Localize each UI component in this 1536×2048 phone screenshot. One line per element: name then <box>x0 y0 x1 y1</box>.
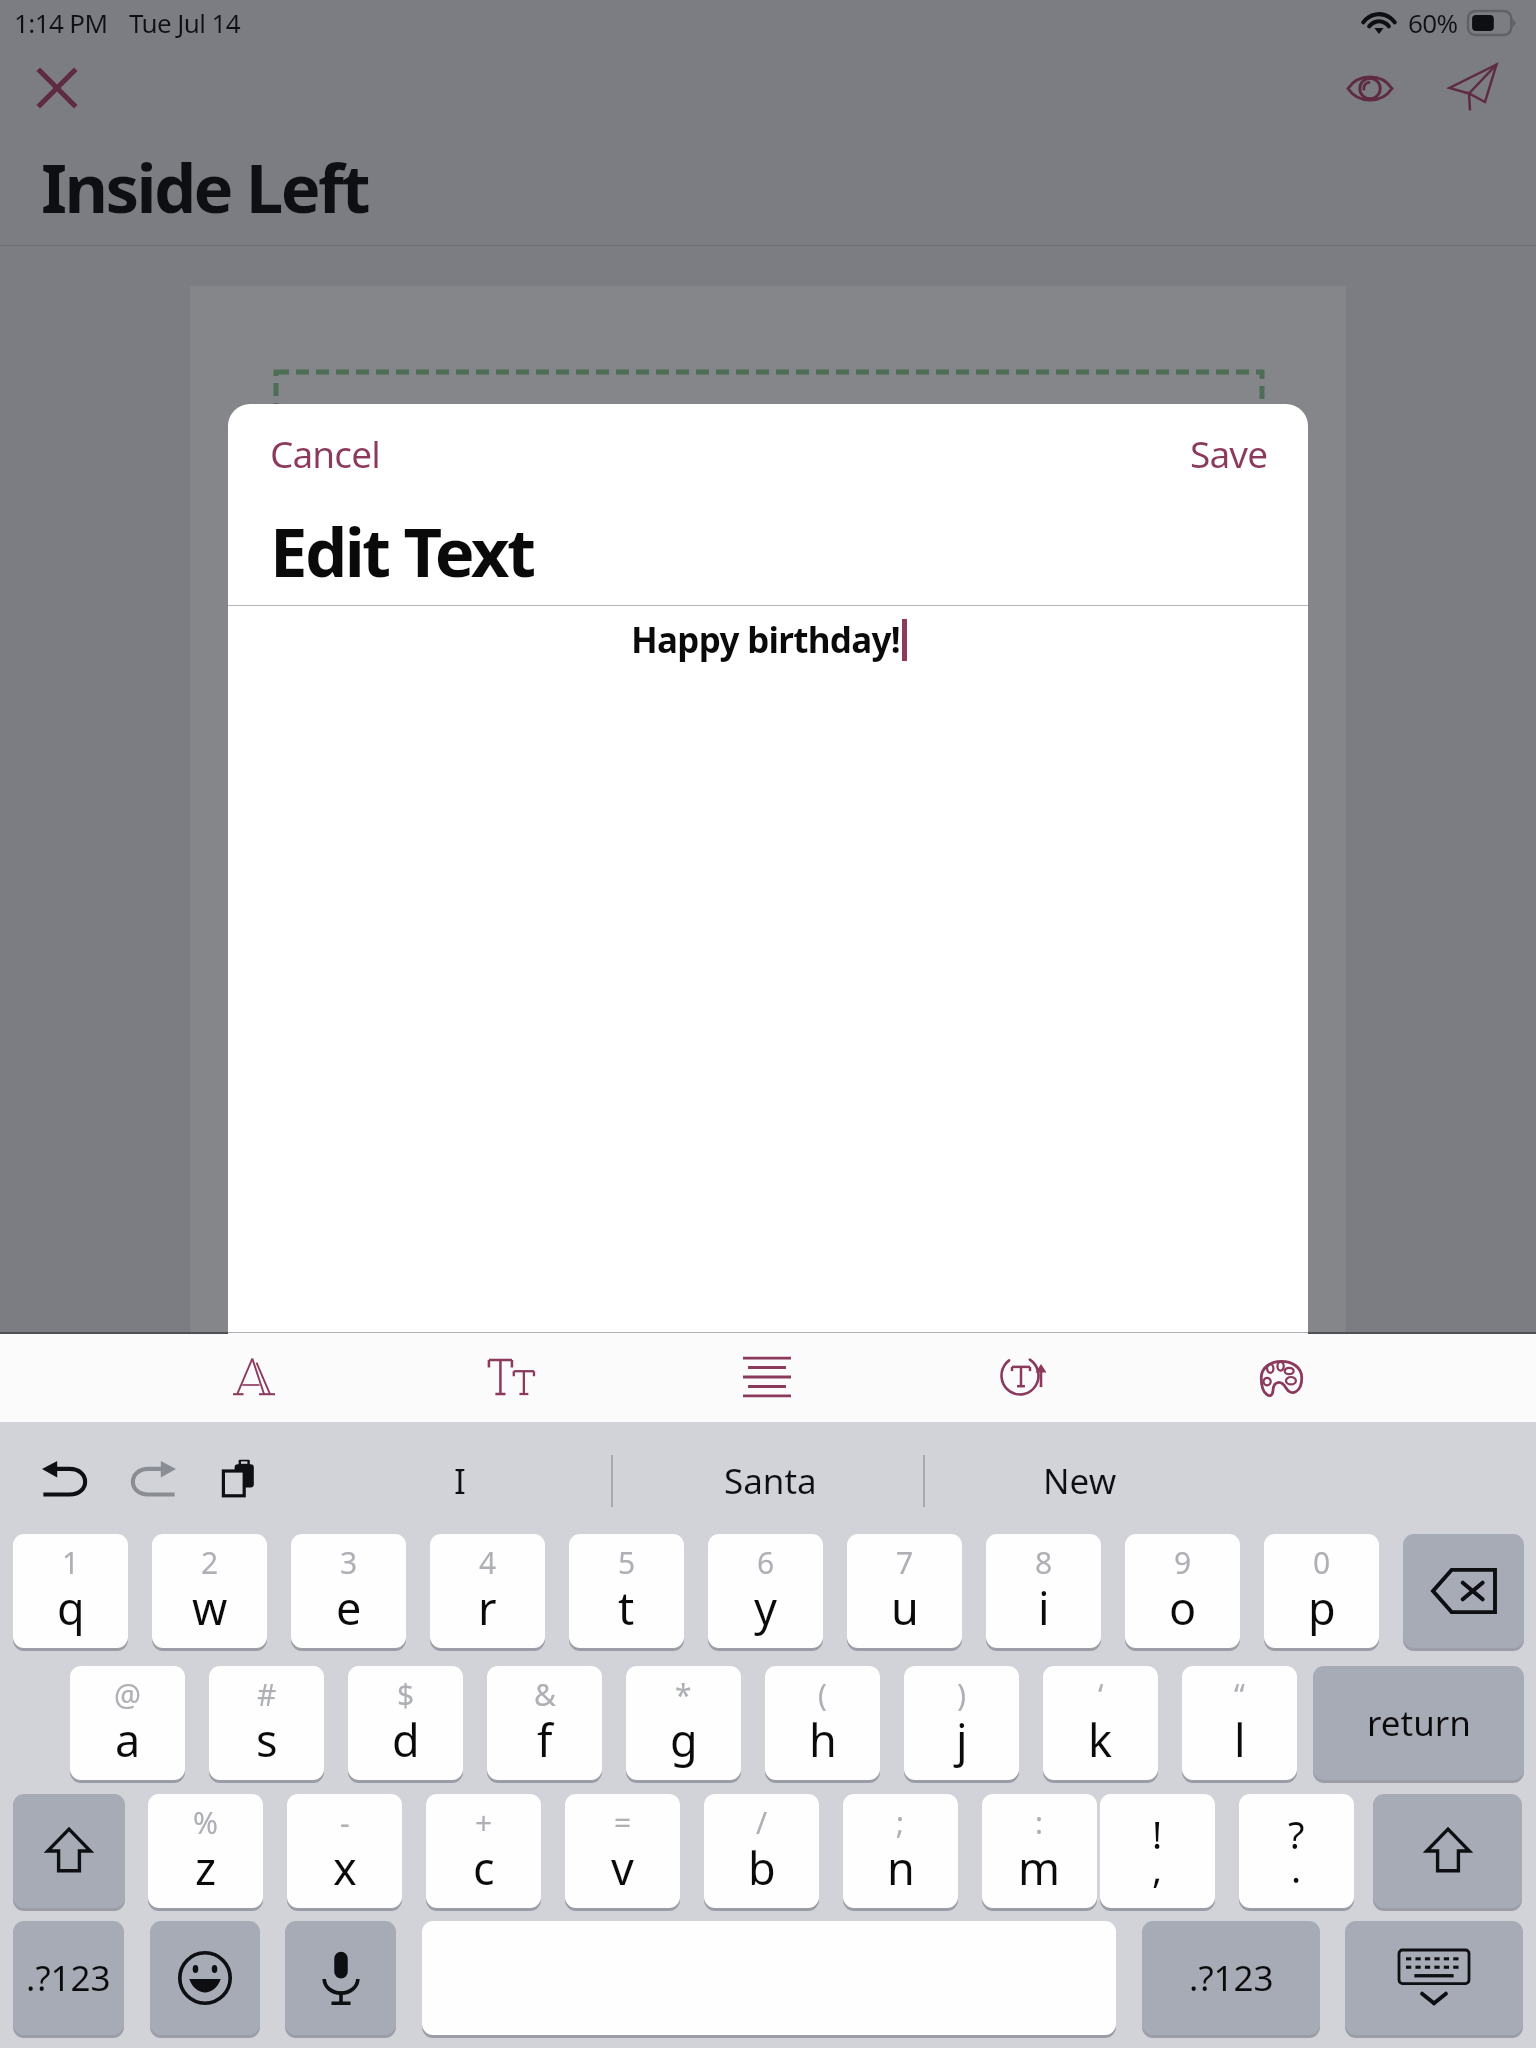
button[interactable]: * <box>626 1666 741 1780</box>
button[interactable]: Preview <box>1340 58 1400 118</box>
button[interactable]: Alignment <box>723 1333 811 1421</box>
button[interactable]: Shift <box>1373 1794 1522 1908</box>
button[interactable]: Paste <box>202 1440 280 1518</box>
button[interactable]: 8 <box>986 1534 1101 1648</box>
staticText: 8 <box>1035 1542 1053 1583</box>
button[interactable]: Dictate <box>285 1921 396 2035</box>
button[interactable]: Hide keyboard <box>1345 1921 1523 2035</box>
staticText: & <box>534 1674 556 1715</box>
button[interactable]: 2 <box>152 1534 267 1648</box>
staticText: Tue Jul 14 <box>129 5 241 40</box>
staticText: / <box>756 1802 768 1843</box>
button[interactable]: 7 <box>847 1534 962 1648</box>
staticText: ) <box>957 1674 966 1715</box>
button[interactable]: 6 <box>708 1534 823 1648</box>
button[interactable]: “ <box>1182 1666 1297 1780</box>
button[interactable]: Cancel <box>262 420 388 486</box>
staticText: t <box>618 1577 635 1638</box>
button[interactable]: Santa <box>670 1426 870 1536</box>
staticText: l <box>1234 1709 1246 1770</box>
staticText: f <box>537 1709 553 1770</box>
staticText: v <box>611 1837 634 1898</box>
button[interactable]: / <box>704 1794 819 1908</box>
staticText: = <box>614 1802 632 1843</box>
button[interactable]: Save <box>1182 420 1276 486</box>
staticText: u <box>891 1577 919 1638</box>
button[interactable]: Rotate text <box>980 1333 1068 1421</box>
button[interactable]: : <box>982 1794 1097 1908</box>
staticText: c <box>473 1837 495 1898</box>
staticText: g <box>670 1709 698 1770</box>
staticText: ; <box>896 1802 905 1843</box>
staticText: $ <box>397 1674 415 1715</box>
button[interactable]: $ <box>348 1666 463 1780</box>
staticText: m <box>1018 1837 1061 1898</box>
staticText: - <box>340 1802 350 1843</box>
button[interactable]: @ <box>70 1666 185 1780</box>
staticText: a <box>115 1709 141 1770</box>
button[interactable]: Undo <box>26 1440 104 1518</box>
button[interactable]: Text size <box>467 1333 555 1421</box>
staticText: 7 <box>896 1542 914 1583</box>
button[interactable]: 0 <box>1264 1534 1379 1648</box>
button[interactable]: I <box>384 1426 536 1536</box>
button[interactable]: ( <box>765 1666 880 1780</box>
button[interactable]: ) <box>904 1666 1019 1780</box>
button[interactable]: return <box>1313 1666 1524 1780</box>
staticText: s <box>256 1709 278 1770</box>
staticText: y <box>754 1577 777 1638</box>
button[interactable]: 4 <box>430 1534 545 1648</box>
button[interactable]: ; <box>843 1794 958 1908</box>
staticText: .?123 <box>1189 1954 1274 2002</box>
button[interactable]: 3 <box>291 1534 406 1648</box>
staticText: , <box>1152 1842 1163 1894</box>
staticText: r <box>478 1577 497 1638</box>
staticText: Edit Text <box>270 505 534 596</box>
button[interactable]: 5 <box>569 1534 684 1648</box>
staticText: % <box>193 1802 218 1843</box>
staticText: d <box>392 1709 420 1770</box>
button[interactable]: Backspace <box>1403 1534 1524 1648</box>
staticText: 1:14 PM <box>14 5 108 40</box>
button[interactable]: ! <box>1100 1794 1215 1908</box>
staticText: p <box>1308 1577 1336 1638</box>
button[interactable]: .?123 <box>1142 1921 1320 2035</box>
staticText: x <box>333 1837 357 1898</box>
staticText: 6 <box>757 1542 775 1583</box>
staticText: ? <box>1288 1808 1305 1860</box>
button[interactable]: .?123 <box>13 1921 124 2035</box>
button[interactable]: Colour <box>1237 1333 1325 1421</box>
button[interactable]: + <box>426 1794 541 1908</box>
button[interactable]: Redo <box>114 1440 192 1518</box>
button[interactable]: Font <box>210 1333 298 1421</box>
staticText: Santa <box>724 1457 817 1505</box>
staticText: 9 <box>1174 1542 1192 1583</box>
staticText: 0 <box>1313 1542 1331 1583</box>
button[interactable]: # <box>209 1666 324 1780</box>
staticText: k <box>1088 1709 1113 1770</box>
staticText: Inside Left <box>41 141 368 232</box>
button[interactable]: 1 <box>13 1534 128 1648</box>
button[interactable]: Emoji <box>150 1921 260 2035</box>
button[interactable]: & <box>487 1666 602 1780</box>
button[interactable]: New <box>980 1426 1180 1536</box>
staticText: i <box>1038 1577 1050 1638</box>
button[interactable]: Close <box>27 58 87 118</box>
staticText: @ <box>114 1674 141 1715</box>
staticText: z <box>195 1837 217 1898</box>
button[interactable]: ‘ <box>1043 1666 1158 1780</box>
staticText: o <box>1169 1577 1197 1638</box>
staticText: 2 <box>201 1542 219 1583</box>
button[interactable]: 9 <box>1125 1534 1240 1648</box>
staticText: q <box>57 1577 85 1638</box>
staticText: ‘ <box>1098 1674 1104 1715</box>
staticText: Cancel <box>270 428 380 478</box>
staticText: I <box>454 1457 466 1505</box>
button[interactable]: % <box>148 1794 263 1908</box>
button[interactable]: = <box>565 1794 680 1908</box>
button[interactable]: Shift <box>13 1794 125 1908</box>
button[interactable]: ? <box>1239 1794 1354 1908</box>
button[interactable]: Send <box>1440 54 1506 120</box>
button[interactable]: - <box>287 1794 402 1908</box>
